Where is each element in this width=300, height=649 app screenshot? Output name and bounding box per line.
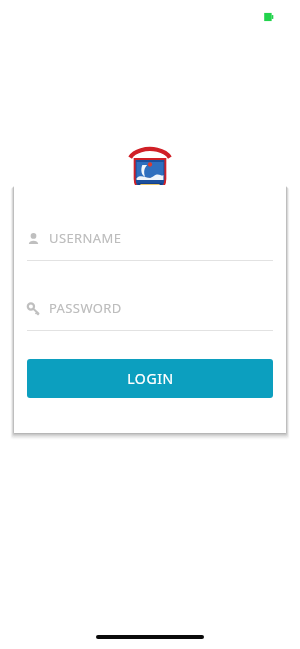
staticText: LOGIN xyxy=(127,369,174,388)
other: Battery xyxy=(263,11,275,23)
button[interactable]: USERNAME xyxy=(27,229,273,261)
button[interactable]: LOGIN xyxy=(27,359,273,398)
staticText: USERNAME xyxy=(49,229,122,247)
staticText: PASSWORD xyxy=(49,299,122,317)
button[interactable]: PASSWORD xyxy=(27,299,273,331)
